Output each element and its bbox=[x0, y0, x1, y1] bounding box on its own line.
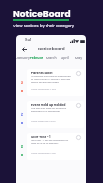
button[interactable]: Back bbox=[18, 44, 30, 54]
other: More bbox=[76, 103, 81, 108]
staticText: Event bbox=[20, 112, 24, 116]
staticText: May bbox=[75, 56, 83, 61]
staticText: All parents informed its postponed to ne… bbox=[31, 75, 73, 84]
button[interactable]: April bbox=[58, 54, 72, 63]
staticText: Noticeboard bbox=[38, 46, 65, 52]
staticText: 9:41 bbox=[25, 38, 32, 42]
button[interactable]: February bbox=[30, 54, 44, 63]
staticText: NoticeBoard bbox=[13, 8, 71, 21]
staticText: Event Held up Holded bbox=[31, 103, 66, 107]
staticText: The fest due state for project is extend… bbox=[31, 107, 73, 113]
staticText: Today Great Mar 11 2021 bbox=[31, 120, 56, 123]
staticText: Parents Meet bbox=[31, 71, 53, 75]
staticText: UNIT Test - 1 bbox=[31, 135, 51, 139]
button[interactable]: Event Held up Holded bbox=[27, 101, 84, 128]
staticText: View Notices by their category bbox=[13, 23, 75, 29]
staticText: March bbox=[46, 56, 57, 61]
other: More bbox=[76, 135, 81, 140]
staticText: Exams bbox=[20, 144, 24, 148]
button[interactable]: Parents Meet bbox=[27, 69, 84, 96]
staticText: UNIT test - 1 will be scheduled on held … bbox=[31, 139, 73, 145]
button[interactable]: March bbox=[44, 54, 58, 63]
staticText: February bbox=[30, 56, 44, 63]
other: More bbox=[76, 71, 81, 76]
staticText: Today November 7, 2021 bbox=[31, 88, 57, 91]
button[interactable]: January bbox=[16, 54, 30, 63]
staticText: Meeting bbox=[20, 80, 24, 84]
button[interactable]: May bbox=[72, 54, 86, 63]
button[interactable]: UNIT Test - 1 bbox=[27, 133, 84, 160]
staticText: Today November 11 2021 bbox=[31, 152, 56, 155]
staticText: January bbox=[16, 56, 30, 61]
staticText: April bbox=[61, 56, 69, 61]
